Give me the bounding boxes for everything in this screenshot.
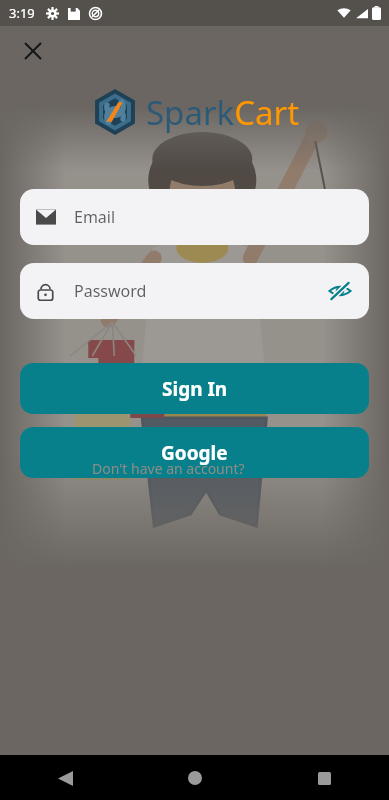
staticText: Sign In: [162, 376, 228, 402]
button[interactable]: Back: [48, 761, 82, 795]
staticText: Don't have an account?: [92, 459, 245, 478]
button[interactable]: Google: [20, 427, 369, 478]
button[interactable]: Home: [178, 761, 212, 795]
button[interactable]: Show password: [325, 276, 355, 306]
button[interactable]: Email: [20, 189, 369, 245]
staticText: SparkCart: [146, 90, 300, 135]
staticText: Password: [74, 280, 325, 302]
button[interactable]: Password: [20, 263, 369, 319]
staticText: Email: [74, 206, 116, 228]
staticText: 3:19: [9, 4, 35, 22]
button[interactable]: Close: [17, 35, 49, 67]
button[interactable]: Sign In: [20, 363, 369, 414]
staticText: Google: [161, 440, 228, 466]
button[interactable]: Recent apps: [307, 761, 341, 795]
button[interactable]: Don't have an account?: [92, 459, 297, 478]
